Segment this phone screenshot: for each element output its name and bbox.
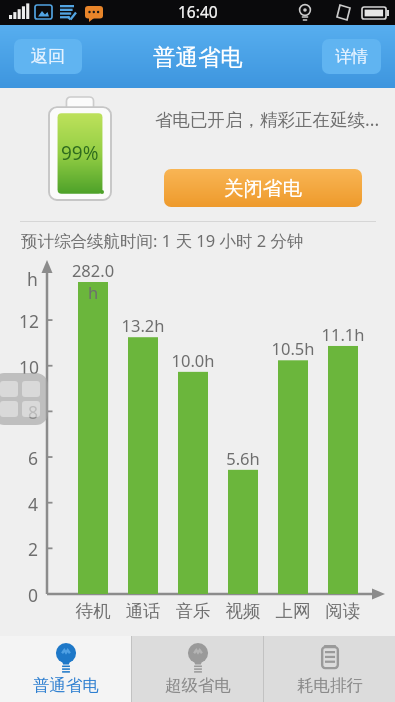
button[interactable]: 返回	[14, 39, 82, 74]
staticText: 0	[28, 583, 39, 607]
staticText: 10	[19, 355, 40, 379]
button[interactable]: 普通省电	[0, 636, 131, 702]
staticText: 关闭省电	[224, 176, 302, 201]
staticText: 4	[28, 492, 39, 516]
button[interactable]: 详情	[322, 39, 381, 74]
staticText: 视频	[221, 600, 265, 622]
staticText: 超级省电	[165, 675, 231, 696]
staticText: 音乐	[171, 600, 215, 622]
staticText: 5.6h	[217, 447, 269, 469]
staticText: h	[27, 267, 38, 291]
staticText: 详情	[335, 46, 368, 67]
staticText: 10.0h	[167, 349, 219, 371]
staticText: 通话	[121, 600, 165, 622]
staticText: 6	[28, 446, 39, 470]
staticText: 普通省电	[153, 43, 243, 71]
staticText: 99%	[61, 140, 99, 166]
staticText: 16:40	[178, 1, 218, 22]
staticText: 13.2h	[117, 314, 169, 336]
staticText: 282.0h	[67, 259, 119, 303]
staticText: 8	[28, 400, 39, 424]
staticText: 省电已开启，精彩正在延续...	[155, 107, 387, 131]
staticText: 预计综合续航时间: 1 天 19 小时 2 分钟	[21, 229, 304, 252]
staticText: 返回	[31, 46, 65, 67]
staticText: 普通省电	[33, 675, 99, 696]
button[interactable]: 超级省电	[132, 636, 263, 702]
staticText: 12	[19, 309, 40, 333]
button[interactable]: 关闭省电	[164, 169, 362, 207]
button[interactable]: 耗电排行	[264, 636, 395, 702]
staticText: 2	[28, 537, 39, 561]
staticText: 10.5h	[267, 337, 319, 359]
staticText: 11.1h	[317, 323, 369, 345]
staticText: 上网	[271, 600, 315, 622]
staticText: 待机	[71, 600, 115, 622]
button[interactable]: Assistive menu	[0, 373, 48, 425]
staticText: 耗电排行	[297, 675, 363, 696]
staticText: 阅读	[321, 600, 365, 622]
